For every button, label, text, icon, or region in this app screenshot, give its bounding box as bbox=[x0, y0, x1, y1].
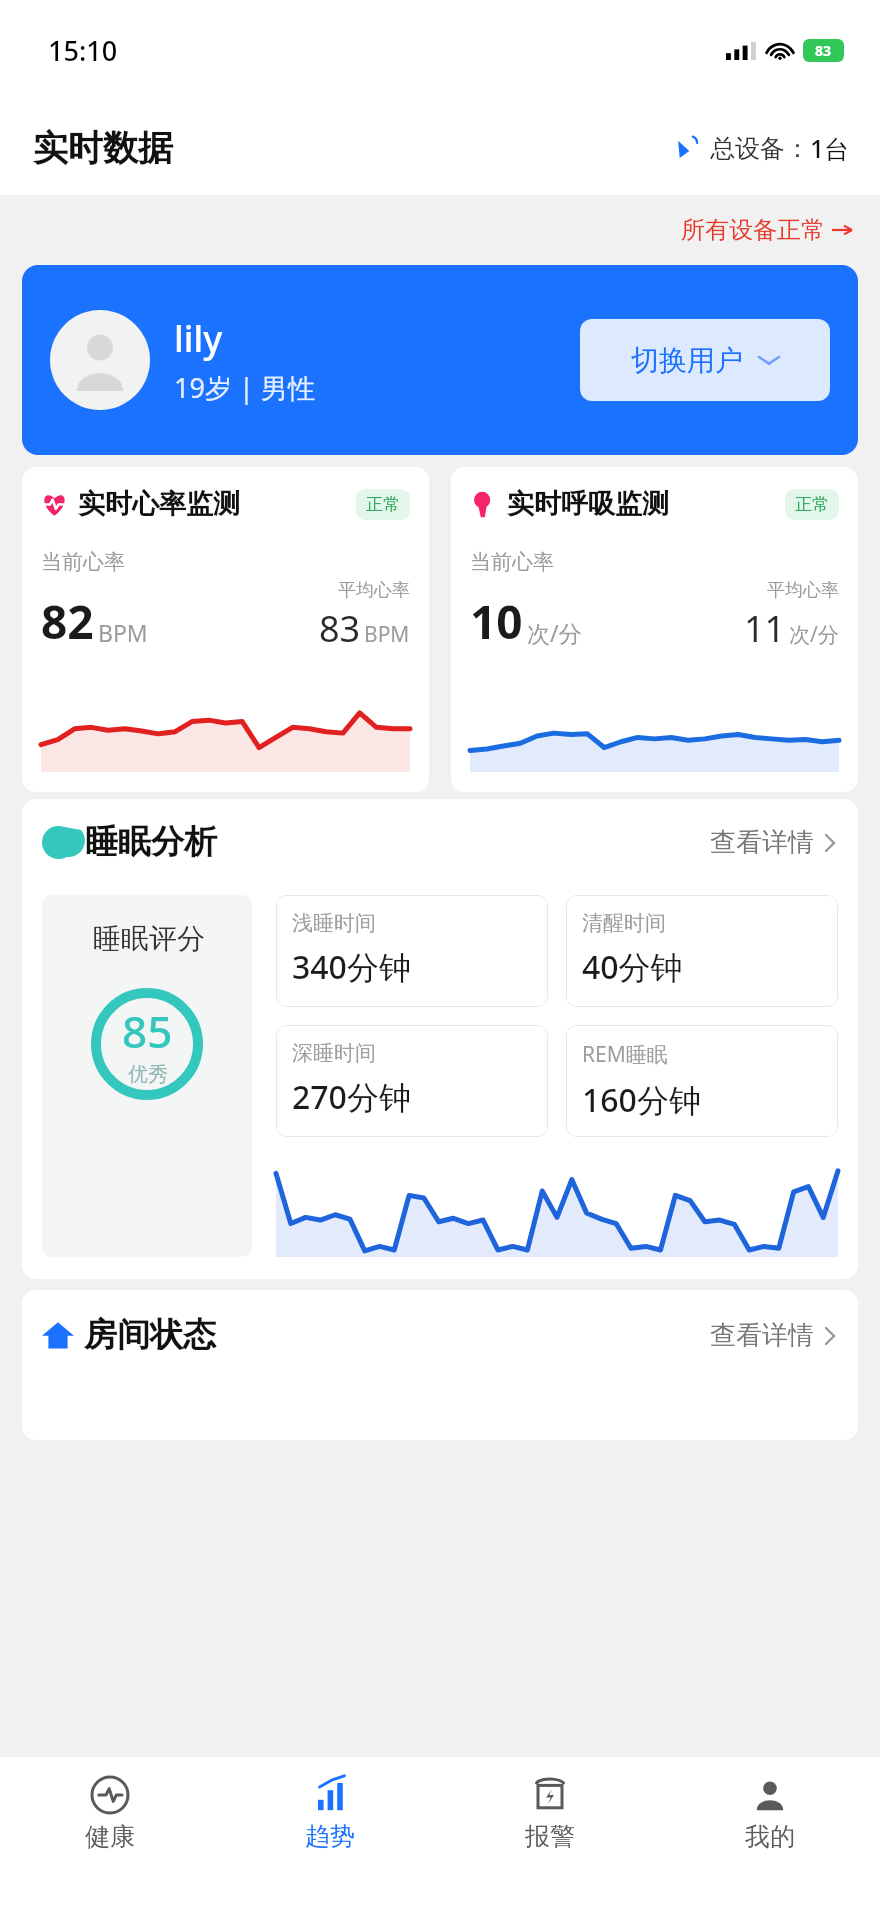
staticText: 深睡时间 bbox=[292, 1040, 376, 1066]
staticText: 所有设备正常 bbox=[681, 215, 825, 245]
staticText: 睡眠评分 bbox=[93, 921, 205, 956]
staticText: REM睡眠 bbox=[582, 1040, 668, 1069]
staticText: 切换用户 bbox=[631, 343, 743, 378]
staticText: 查看详情 bbox=[710, 1319, 814, 1352]
staticText: 清醒时间 bbox=[582, 910, 666, 936]
staticText: 40分钟 bbox=[582, 945, 683, 989]
staticText: 房间状态 bbox=[84, 1314, 216, 1356]
button[interactable]: 趋势 bbox=[220, 1757, 440, 1907]
button[interactable]: 查看详情 bbox=[710, 826, 838, 859]
staticText: 10 bbox=[470, 590, 523, 653]
button[interactable]: 查看详情 bbox=[710, 1319, 838, 1352]
staticText: 160分钟 bbox=[582, 1078, 701, 1122]
button[interactable]: lily bbox=[22, 265, 858, 455]
button[interactable]: 总设备： bbox=[675, 131, 850, 165]
staticText: 正常 bbox=[366, 494, 400, 515]
staticText: 趋势 bbox=[305, 1821, 355, 1852]
button[interactable]: 所有设备正常 bbox=[681, 215, 852, 245]
staticText: 270分钟 bbox=[292, 1075, 411, 1119]
staticText: 睡眠分析 bbox=[85, 821, 217, 863]
staticText: lily bbox=[174, 314, 223, 363]
staticText: 1台 bbox=[810, 131, 850, 165]
staticText: BPM bbox=[364, 620, 410, 649]
staticText: BPM bbox=[98, 617, 148, 648]
button[interactable]: 实时呼吸监测 bbox=[451, 467, 858, 792]
staticText: 实时心率监测 bbox=[78, 487, 240, 521]
staticText: 当前心率 bbox=[470, 549, 554, 575]
staticText: 82 bbox=[41, 590, 94, 653]
button[interactable]: 深睡时间 bbox=[276, 1025, 548, 1137]
staticText: 次/分 bbox=[527, 617, 582, 648]
staticText: 平均心率 bbox=[767, 579, 839, 602]
staticText: 报警 bbox=[525, 1821, 575, 1852]
staticText: 健康 bbox=[85, 1821, 135, 1852]
staticText: 83 bbox=[319, 604, 361, 653]
staticText: 查看详情 bbox=[710, 826, 814, 859]
staticText: 83 bbox=[815, 41, 832, 60]
staticText: 15:10 bbox=[48, 32, 118, 69]
staticText: 340分钟 bbox=[292, 945, 411, 989]
staticText: 当前心率 bbox=[41, 549, 125, 575]
staticText: 19岁 | 男性 bbox=[174, 369, 315, 406]
button[interactable]: 健康 bbox=[0, 1757, 220, 1907]
button[interactable]: 浅睡时间 bbox=[276, 895, 548, 1007]
staticText: 浅睡时间 bbox=[292, 910, 376, 936]
staticText: 正常 bbox=[795, 494, 829, 515]
staticText: 实时数据 bbox=[33, 126, 173, 170]
staticText: 实时呼吸监测 bbox=[507, 487, 669, 521]
staticText: 我的 bbox=[745, 1821, 795, 1852]
button[interactable]: 清醒时间 bbox=[566, 895, 838, 1007]
button[interactable]: 切换用户 bbox=[580, 319, 830, 401]
button[interactable]: 实时心率监测 bbox=[22, 467, 429, 792]
button[interactable]: REM睡眠 bbox=[566, 1025, 838, 1137]
button[interactable]: 我的 bbox=[660, 1757, 880, 1907]
staticText: 次/分 bbox=[789, 620, 839, 649]
button[interactable]: 报警 bbox=[440, 1757, 660, 1907]
staticText: 总设备： bbox=[710, 133, 810, 164]
staticText: 优秀 bbox=[128, 1062, 168, 1087]
staticText: 85 bbox=[122, 1001, 173, 1061]
staticText: 11 bbox=[744, 604, 786, 653]
staticText: 平均心率 bbox=[338, 579, 410, 602]
